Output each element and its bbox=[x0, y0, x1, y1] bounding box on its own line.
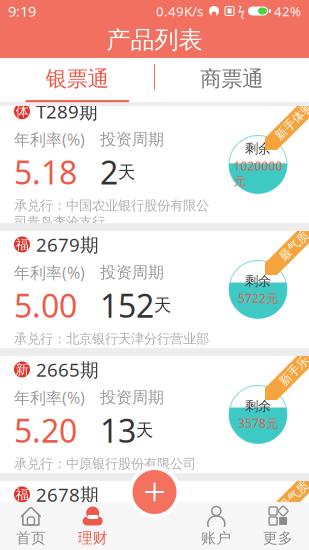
button[interactable]: 账户 bbox=[185, 502, 247, 550]
staticText: 8800元 bbox=[238, 540, 278, 550]
staticText: 13 bbox=[100, 409, 136, 452]
staticText: 新手体验 bbox=[270, 114, 309, 128]
staticText: 2678期 bbox=[36, 482, 99, 507]
staticText: 5.20 bbox=[14, 409, 77, 452]
staticText: 5722元 bbox=[238, 290, 278, 306]
button[interactable]: 商票通 bbox=[154, 58, 309, 102]
button[interactable]: 首页 bbox=[0, 502, 62, 550]
staticText: 5.18 bbox=[14, 151, 77, 193]
staticText: 投资周期 bbox=[100, 513, 164, 532]
staticText: T289期 bbox=[36, 99, 98, 124]
staticText: 1020000元 bbox=[233, 158, 282, 189]
button[interactable]: 新建 bbox=[128, 466, 180, 518]
staticText: ϟ bbox=[238, 3, 245, 19]
staticText: 天 bbox=[136, 420, 153, 441]
staticText: 账户 bbox=[201, 529, 231, 547]
staticText: 2 bbox=[100, 151, 118, 193]
staticText: 剩余 bbox=[245, 523, 271, 539]
staticText: 承兑行：北京银行天津分行营业部 bbox=[14, 331, 209, 347]
staticText: 年利率(%) bbox=[14, 129, 85, 150]
staticText: 福 bbox=[15, 486, 28, 503]
staticText: 天 bbox=[154, 295, 171, 316]
button[interactable]: 新 bbox=[0, 356, 309, 473]
staticText: 银票通 bbox=[46, 66, 109, 92]
staticText: 剩余 bbox=[245, 273, 271, 289]
staticText: 理财 bbox=[78, 529, 108, 547]
button[interactable]: 体 bbox=[0, 106, 309, 223]
staticText: 首页 bbox=[16, 529, 46, 547]
staticText: 投资周期 bbox=[100, 388, 164, 407]
button[interactable]: 更多 bbox=[247, 502, 309, 550]
button[interactable]: 福 bbox=[0, 231, 309, 348]
staticText: 152 bbox=[100, 284, 154, 327]
staticText: 体 bbox=[15, 103, 28, 119]
staticText: 更多 bbox=[263, 529, 293, 547]
staticText: 年利率(%) bbox=[14, 262, 85, 283]
button[interactable]: 银票通 bbox=[0, 58, 154, 102]
staticText: 投资周期 bbox=[100, 129, 164, 149]
staticText: 0.49K/s bbox=[156, 2, 203, 20]
staticText: 92 bbox=[100, 534, 136, 550]
staticText: 最气质 bbox=[276, 239, 309, 253]
staticText: 年利率(%) bbox=[14, 387, 85, 408]
staticText: 产品列表 bbox=[106, 25, 202, 55]
staticText: 新手乐 bbox=[276, 364, 309, 378]
staticText: 商票通 bbox=[200, 66, 263, 92]
button[interactable]: 理财 bbox=[62, 502, 124, 550]
staticText: 3578元 bbox=[238, 415, 278, 431]
staticText: 9:19 bbox=[8, 1, 36, 21]
staticText: 2665期 bbox=[36, 357, 99, 382]
staticText: 42% bbox=[274, 2, 301, 20]
staticText: 天 bbox=[118, 161, 135, 183]
staticText: 新 bbox=[15, 361, 28, 378]
staticText: 福 bbox=[15, 236, 28, 253]
staticText: 5.00 bbox=[14, 284, 77, 327]
staticText: 承兑行：中国农业银行股份有限公司青岛李沧支行 bbox=[14, 197, 209, 230]
staticText: 5.00 bbox=[14, 534, 77, 550]
staticText: 剩余 bbox=[245, 398, 271, 414]
button[interactable]: 福 bbox=[0, 481, 309, 550]
staticText: 剩余 bbox=[245, 140, 271, 157]
staticText: 最气质 bbox=[276, 489, 309, 503]
staticText: 承兑行：中原银行股份有限公司 bbox=[14, 456, 196, 472]
staticText: 投资周期 bbox=[100, 263, 164, 282]
staticText: 2679期 bbox=[36, 232, 99, 257]
staticText: 年利率(%) bbox=[14, 512, 85, 533]
